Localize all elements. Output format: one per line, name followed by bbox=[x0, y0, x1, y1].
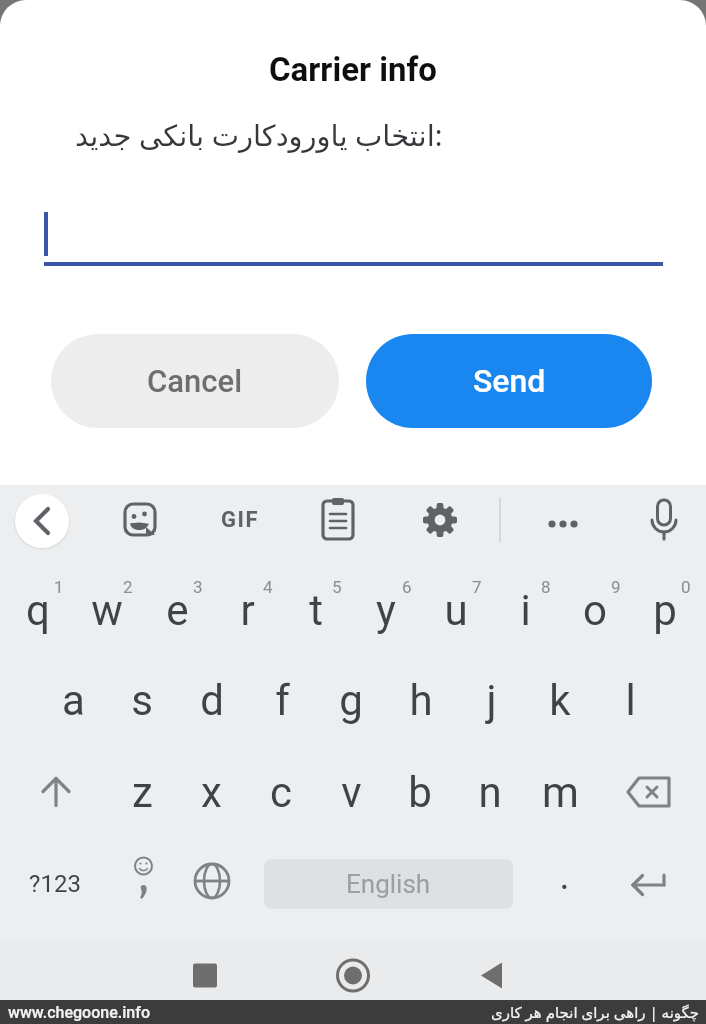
staticText: f bbox=[275, 676, 290, 725]
button[interactable]: w bbox=[72, 570, 142, 650]
button[interactable]: English bbox=[264, 859, 513, 909]
staticText: چگونه | راهی برای انجام هر کاری bbox=[491, 1002, 700, 1022]
staticText: m bbox=[542, 768, 579, 817]
staticText: w bbox=[91, 586, 123, 635]
button[interactable]: d bbox=[177, 660, 247, 740]
staticText: 7 bbox=[472, 577, 482, 597]
button[interactable]: y bbox=[351, 570, 421, 650]
staticText: x bbox=[201, 768, 222, 817]
button[interactable]: p bbox=[630, 570, 700, 650]
button[interactable]: i bbox=[490, 570, 560, 650]
button[interactable]: f bbox=[247, 660, 317, 740]
staticText: i bbox=[520, 586, 531, 635]
staticText: 4 bbox=[263, 577, 273, 597]
staticText: j bbox=[486, 676, 497, 725]
staticText: English bbox=[346, 869, 431, 899]
staticText: Cancel bbox=[147, 363, 243, 399]
button[interactable]: o bbox=[560, 570, 630, 650]
staticText: l bbox=[625, 676, 636, 725]
button[interactable]: GIF bbox=[205, 490, 275, 550]
button[interactable]: m bbox=[525, 752, 595, 832]
staticText: 3 bbox=[193, 577, 203, 597]
button[interactable] bbox=[15, 494, 69, 548]
staticText: y bbox=[376, 586, 396, 635]
staticText: o bbox=[583, 586, 607, 635]
button[interactable]: k bbox=[525, 660, 595, 740]
staticText: z bbox=[132, 768, 153, 817]
button[interactable] bbox=[110, 490, 170, 550]
button[interactable]: u bbox=[421, 570, 491, 650]
staticText: ?123 bbox=[29, 870, 81, 898]
staticText: g bbox=[339, 676, 363, 725]
button[interactable]: x bbox=[176, 752, 246, 832]
button[interactable] bbox=[108, 844, 178, 924]
button[interactable] bbox=[634, 490, 694, 550]
staticText: t bbox=[309, 586, 323, 635]
staticText: s bbox=[131, 676, 153, 725]
button[interactable]: . bbox=[529, 836, 599, 916]
button[interactable]: t bbox=[281, 570, 351, 650]
button[interactable] bbox=[308, 490, 368, 550]
staticText: 2 bbox=[123, 577, 133, 597]
button[interactable]: Cancel bbox=[51, 334, 339, 428]
button[interactable]: v bbox=[316, 752, 386, 832]
button[interactable] bbox=[410, 490, 470, 550]
button[interactable]: r bbox=[212, 570, 282, 650]
staticText: 8 bbox=[541, 577, 551, 597]
staticText: u bbox=[444, 586, 468, 635]
button[interactable] bbox=[21, 752, 91, 832]
button[interactable]: g bbox=[316, 660, 386, 740]
staticText: a bbox=[62, 676, 85, 725]
staticText: Carrier info bbox=[269, 50, 437, 89]
staticText: d bbox=[200, 676, 224, 725]
button[interactable]: q bbox=[3, 570, 73, 650]
staticText: انتخاب یاورودکارت بانکی جدید: bbox=[75, 115, 443, 154]
button[interactable] bbox=[613, 752, 683, 832]
button[interactable]: l bbox=[595, 660, 665, 740]
button[interactable]: ?123 bbox=[20, 844, 90, 924]
staticText: v bbox=[341, 768, 362, 817]
staticText: Send bbox=[473, 362, 546, 400]
button[interactable]: n bbox=[455, 752, 525, 832]
button[interactable] bbox=[175, 941, 235, 1000]
staticText: p bbox=[653, 586, 677, 635]
button[interactable] bbox=[463, 941, 523, 1000]
button[interactable]: j bbox=[456, 660, 526, 740]
staticText: c bbox=[270, 768, 292, 817]
staticText: h bbox=[409, 676, 433, 725]
button[interactable] bbox=[323, 941, 383, 1000]
staticText: . bbox=[559, 854, 570, 899]
staticText: n bbox=[478, 768, 502, 817]
staticText: q bbox=[26, 586, 50, 635]
button[interactable]: h bbox=[386, 660, 456, 740]
staticText: 0 bbox=[681, 577, 691, 597]
staticText: r bbox=[240, 586, 255, 635]
staticText: k bbox=[549, 676, 571, 725]
staticText: 5 bbox=[332, 577, 342, 597]
button[interactable]: s bbox=[107, 660, 177, 740]
staticText: www.chegoone.info bbox=[8, 1003, 151, 1022]
button[interactable] bbox=[615, 844, 685, 924]
staticText: 6 bbox=[402, 577, 412, 597]
button[interactable]: Send bbox=[366, 334, 652, 428]
button[interactable]: a bbox=[38, 660, 108, 740]
button[interactable] bbox=[177, 844, 247, 924]
button[interactable]: z bbox=[107, 752, 177, 832]
staticText: 9 bbox=[611, 577, 621, 597]
staticText: b bbox=[408, 768, 432, 817]
staticText: 1 bbox=[54, 577, 64, 597]
button[interactable]: b bbox=[385, 752, 455, 832]
staticText: e bbox=[166, 586, 189, 635]
button[interactable]: c bbox=[246, 752, 316, 832]
staticText: GIF bbox=[221, 507, 259, 533]
button[interactable]: e bbox=[142, 570, 212, 650]
